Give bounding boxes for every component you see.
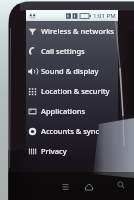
staticText: Wireless & networks [41,26,114,36]
button[interactable]: Privacy [26,141,118,161]
staticText: Applications [41,106,86,116]
button[interactable]: Menu [57,178,73,194]
staticText: Accounts & sync [41,126,100,136]
button[interactable]: Wireless & networks [26,21,118,41]
staticText: Privacy [41,146,67,156]
button[interactable]: Sound & display [26,61,118,81]
button[interactable]: Home [81,179,97,195]
button[interactable]: Search [113,177,129,193]
staticText: Call settings [41,46,85,56]
staticText: Sound & display [41,66,99,76]
button[interactable]: Accounts & sync [26,121,118,141]
button[interactable]: Call settings [26,41,118,61]
staticText: 1:01 PM [93,12,116,20]
staticText: Location & security [41,86,110,96]
button[interactable]: Applications [26,101,118,121]
button[interactable]: Location & security [26,81,118,101]
